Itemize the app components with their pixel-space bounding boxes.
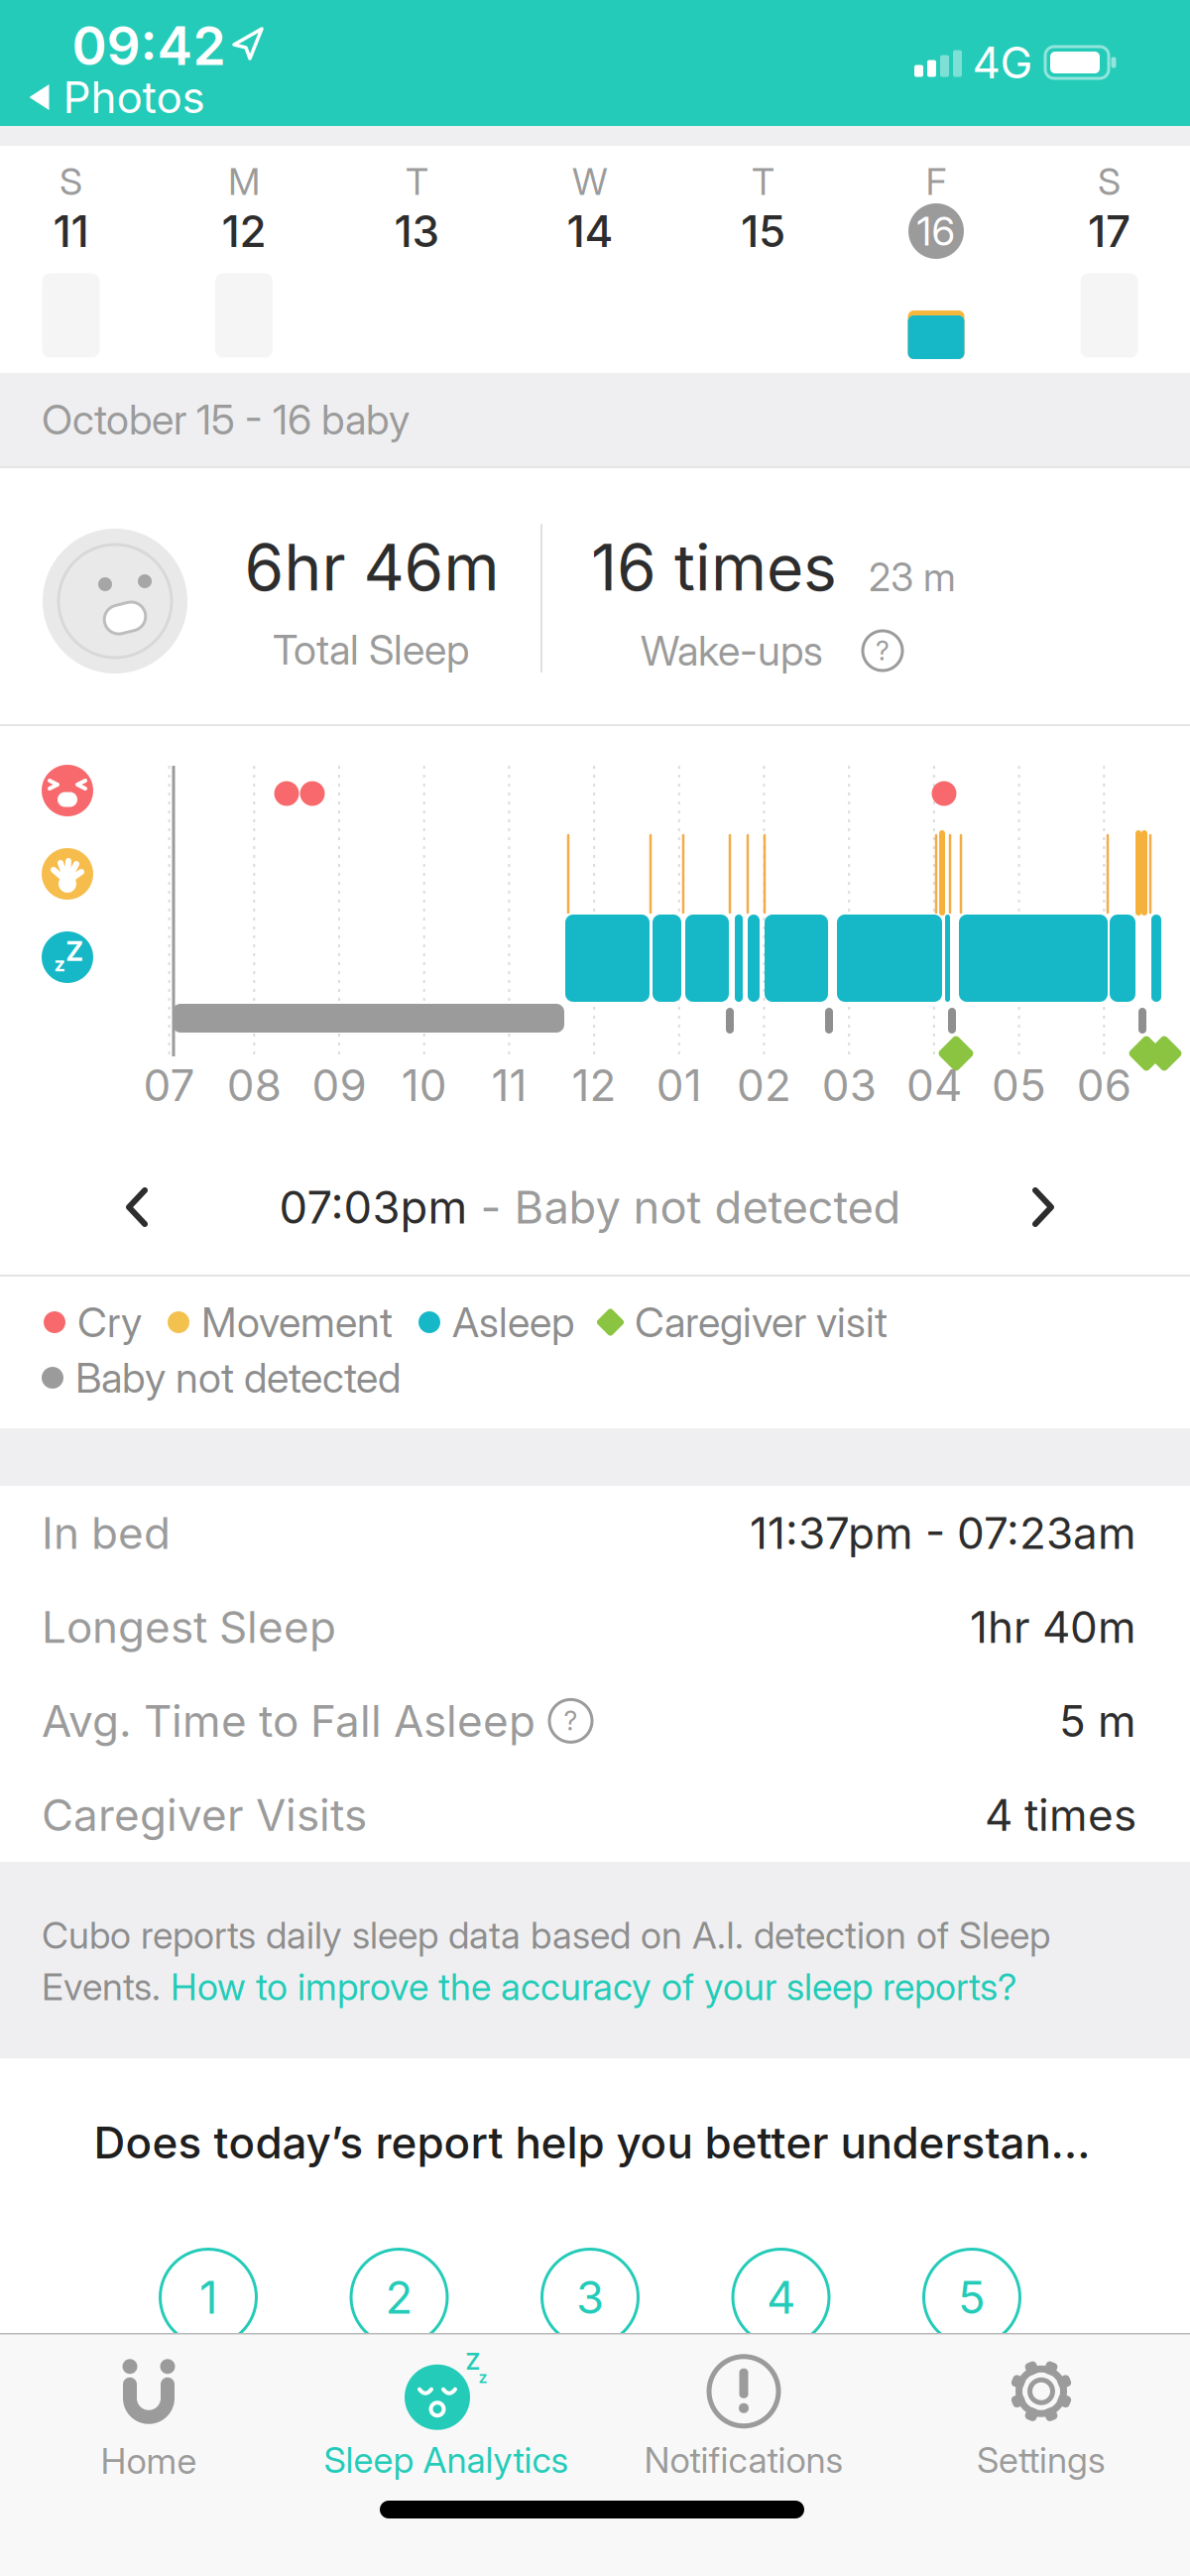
button[interactable]: S	[1023, 146, 1190, 373]
staticText: Total Sleep	[273, 626, 469, 674]
staticText: 5	[958, 2271, 986, 2324]
staticText: T	[752, 160, 774, 203]
staticText: In bed	[42, 1507, 171, 1559]
staticText: 11	[491, 1059, 527, 1111]
staticText: 4	[767, 2271, 795, 2324]
button[interactable]: F	[850, 146, 1022, 373]
staticText: Does today’s report help you better unde…	[94, 2117, 1090, 2168]
staticText: -	[468, 1181, 514, 1234]
button[interactable]: S	[0, 146, 157, 373]
staticText: Notifications	[644, 2439, 843, 2481]
staticText: 2	[385, 2271, 413, 2324]
staticText: Wake-ups	[641, 626, 823, 675]
staticText: Sleep Analytics	[324, 2439, 569, 2481]
staticText: ?	[564, 1705, 578, 1736]
button[interactable]: M	[158, 146, 330, 373]
button[interactable]: Photos	[29, 71, 205, 123]
button[interactable]: 2	[351, 2249, 447, 2345]
button[interactable]: Previous event	[125, 1188, 149, 1226]
staticText: Z	[66, 936, 83, 967]
staticText: 1hr 40m	[970, 1601, 1136, 1653]
staticText: Events.	[42, 1965, 171, 2009]
staticText: 12	[222, 205, 266, 257]
staticText: 03	[822, 1059, 876, 1111]
button[interactable]: Z	[324, 2352, 569, 2481]
staticText: 11	[53, 205, 89, 257]
staticText: 01	[656, 1059, 702, 1111]
staticText: Asleep	[452, 1298, 574, 1346]
staticText: M	[228, 160, 260, 203]
button[interactable]: About this metric	[549, 1700, 592, 1742]
staticText: 02	[737, 1059, 791, 1111]
staticText: 05	[992, 1059, 1046, 1111]
button[interactable]: Next event	[1031, 1188, 1055, 1226]
staticText: Movement	[201, 1298, 393, 1346]
staticText: 11:37pm - 07:23am	[750, 1507, 1136, 1559]
button[interactable]: About wake-ups	[863, 631, 902, 671]
staticText: Z	[466, 2348, 480, 2375]
staticText: 16 times	[591, 530, 837, 605]
staticText: 08	[227, 1059, 281, 1111]
staticText: 4 times	[985, 1789, 1136, 1841]
staticText: 15	[741, 205, 785, 257]
button[interactable]: Settings	[977, 2356, 1106, 2481]
staticText: 6hr 46m	[244, 530, 499, 605]
staticText: Cry	[77, 1298, 142, 1346]
staticText: 09	[312, 1059, 366, 1111]
staticText: S	[59, 160, 82, 203]
staticText: 10	[401, 1059, 447, 1111]
staticText: 17	[1088, 205, 1130, 257]
staticText: 09:42	[72, 14, 226, 77]
staticText: 06	[1077, 1059, 1131, 1111]
staticText: 23 m	[869, 555, 956, 600]
button[interactable]: W	[504, 146, 676, 373]
staticText: Baby not detected	[75, 1354, 401, 1402]
staticText: Longest Sleep	[42, 1601, 336, 1653]
button[interactable]: 3	[542, 2249, 638, 2345]
staticText: 04	[906, 1059, 962, 1111]
staticText: 3	[576, 2271, 604, 2324]
staticText: 5 m	[1059, 1695, 1136, 1747]
button[interactable]: Home	[101, 2359, 197, 2482]
button[interactable]: How to improve the accuracy of your slee…	[171, 1965, 1016, 2009]
staticText: 07	[143, 1059, 195, 1111]
staticText: S	[1098, 160, 1121, 203]
staticText: 4G	[972, 37, 1033, 88]
staticText: z	[478, 2368, 487, 2387]
button[interactable]: 4	[733, 2249, 829, 2345]
button[interactable]: T	[677, 146, 849, 373]
button[interactable]: 1	[160, 2249, 256, 2345]
staticText: Caregiver Visits	[42, 1789, 367, 1841]
button[interactable]: T	[331, 146, 503, 373]
staticText: W	[572, 160, 608, 203]
staticText: z	[54, 952, 65, 976]
staticText: October 15 - 16 baby	[42, 395, 410, 444]
staticText: 13	[394, 205, 440, 257]
staticText: 16	[917, 208, 955, 255]
staticText: 12	[572, 1059, 616, 1111]
staticText: T	[406, 160, 428, 203]
button[interactable]: 5	[924, 2249, 1020, 2345]
staticText: F	[926, 160, 947, 203]
staticText: 14	[567, 205, 613, 257]
staticText: Cubo reports daily sleep data based on A…	[42, 1913, 1050, 1957]
staticText: 07:03pm	[279, 1181, 468, 1234]
staticText: Photos	[63, 71, 205, 123]
staticText: Settings	[977, 2439, 1106, 2481]
staticText: How to improve the accuracy of your slee…	[171, 1965, 1016, 2009]
staticText: 1	[199, 2271, 217, 2324]
staticText: Avg. Time to Fall Asleep	[42, 1695, 535, 1747]
staticText: ?	[876, 635, 890, 666]
staticText: Caregiver visit	[635, 1298, 888, 1346]
staticText: Home	[101, 2440, 197, 2482]
staticText: Baby not detected	[514, 1181, 901, 1234]
button[interactable]: Notifications	[644, 2356, 843, 2481]
